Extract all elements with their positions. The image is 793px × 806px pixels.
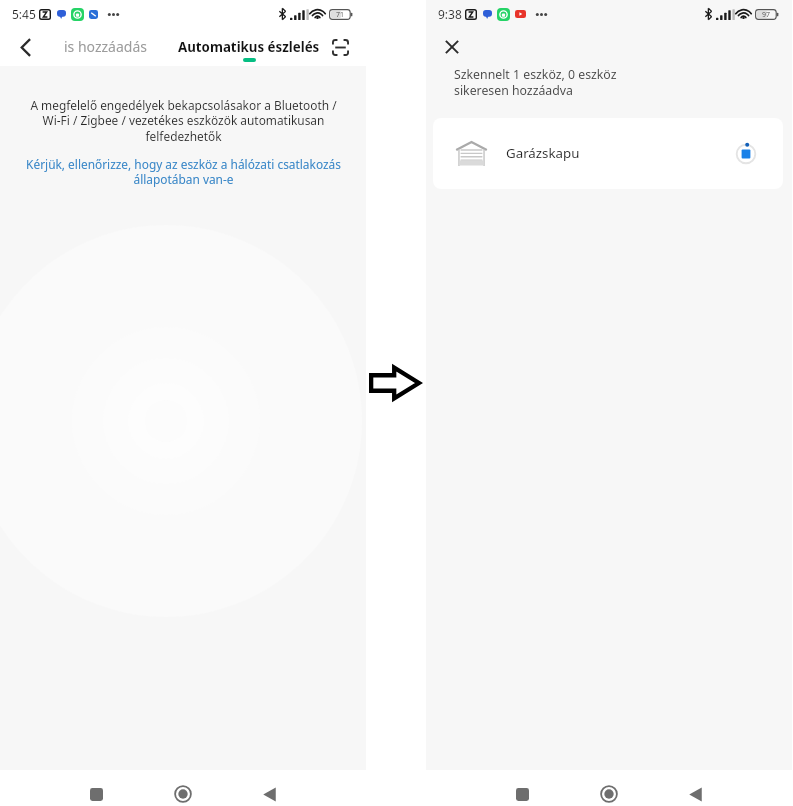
button[interactable]: Home	[165, 776, 201, 806]
button[interactable]: Back	[677, 776, 713, 806]
button[interactable]: Garázskapu	[433, 118, 783, 189]
staticText: 97	[762, 10, 771, 20]
staticText: A megfelelő engedélyek bekapcsolásakor a…	[30, 97, 337, 145]
staticText: 9:38	[438, 6, 462, 22]
staticText: is hozzáadás	[64, 37, 147, 56]
staticText: Szkennelt 1 eszköz, 0 eszköz sikeresen h…	[454, 66, 617, 99]
button[interactable]: Recent apps	[504, 776, 540, 806]
staticText: Kérjük, ellenőrizze, hogy az eszköz a há…	[26, 156, 341, 188]
button[interactable]: Close	[439, 34, 465, 60]
button[interactable]: Back	[251, 776, 287, 806]
button[interactable]: Recent apps	[78, 776, 114, 806]
button[interactable]: Automatikus észlelés	[172, 28, 326, 66]
staticText: 5:45	[12, 6, 36, 22]
staticText: 71	[336, 10, 345, 20]
button[interactable]: Home	[591, 776, 627, 806]
staticText: Garázskapu	[506, 144, 580, 162]
staticText: Automatikus észlelés	[178, 38, 320, 56]
button[interactable]: Back	[12, 34, 38, 60]
button[interactable]: Scan	[328, 35, 352, 59]
button[interactable]: is hozzáadás	[58, 28, 153, 66]
